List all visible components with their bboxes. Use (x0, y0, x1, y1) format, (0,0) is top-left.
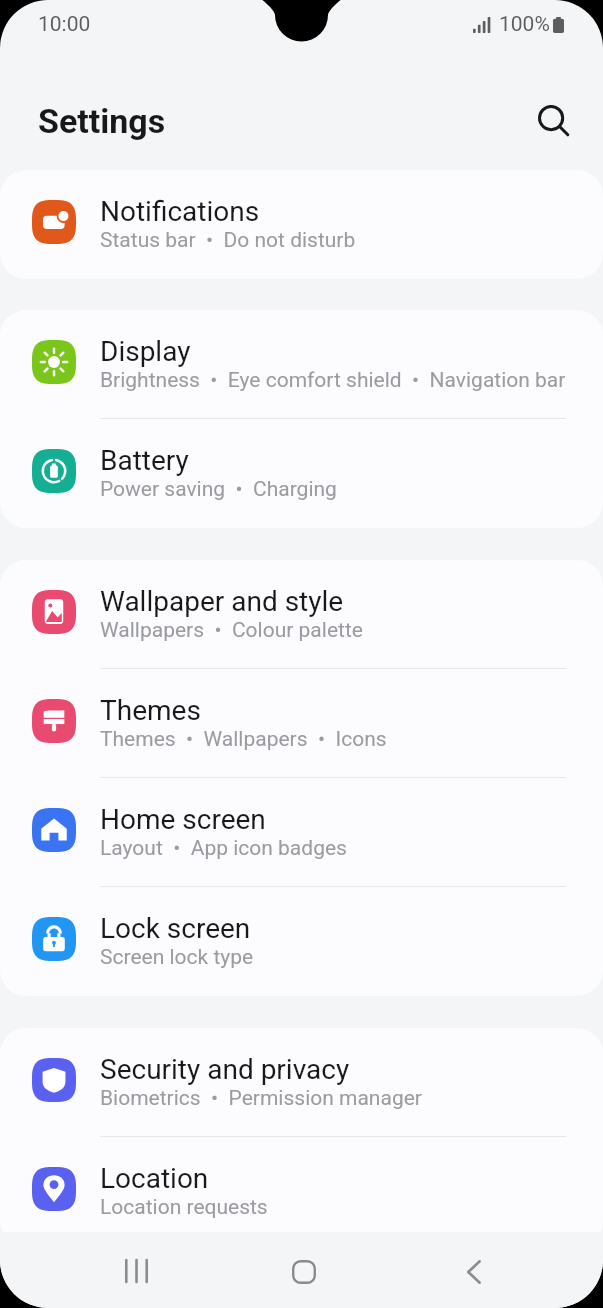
staticText: Home screen (100, 803, 266, 836)
staticText: Brightness • Eye comfort shield • Naviga… (100, 368, 566, 393)
staticText: Location requests (100, 1195, 268, 1220)
staticText: Lock screen (100, 912, 251, 945)
button[interactable]: Display (0, 310, 603, 419)
button[interactable]: Back (442, 1240, 506, 1304)
staticText: Layout • App icon badges (100, 836, 347, 861)
staticText: Wallpaper and style (100, 585, 344, 618)
button[interactable]: Lock screen (0, 887, 603, 996)
staticText: Screen lock type (100, 945, 254, 970)
staticText: Themes (100, 694, 201, 727)
button[interactable]: Wallpaper and style (0, 560, 603, 669)
staticText: Security and privacy (100, 1053, 350, 1086)
staticText: Display (100, 335, 191, 368)
button[interactable]: Themes (0, 669, 603, 778)
staticText: Notifications (100, 195, 260, 228)
staticText: Biometrics • Permission manager (100, 1086, 422, 1111)
staticText: Location (100, 1162, 209, 1195)
staticText: Themes • Wallpapers • Icons (100, 727, 387, 752)
staticText: Power saving • Charging (100, 477, 337, 502)
staticText: Battery (100, 444, 189, 477)
button[interactable]: Search (525, 92, 581, 148)
button[interactable]: Security and privacy (0, 1028, 603, 1137)
staticText: 100% (499, 12, 550, 37)
button[interactable]: Battery (0, 419, 603, 528)
staticText: 10:00 (38, 12, 91, 37)
button[interactable]: Home screen (0, 778, 603, 887)
staticText: Status bar • Do not disturb (100, 228, 356, 253)
staticText: Wallpapers • Colour palette (100, 618, 363, 643)
button[interactable]: Home (272, 1240, 336, 1304)
button[interactable]: Location (0, 1137, 603, 1246)
button[interactable]: Recent apps (104, 1239, 168, 1303)
staticText: Settings (38, 101, 166, 141)
button[interactable]: Notifications (0, 170, 603, 279)
